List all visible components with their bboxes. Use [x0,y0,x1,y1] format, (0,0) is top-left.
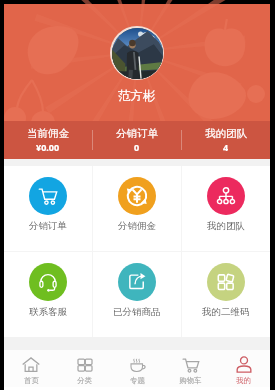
other: Profile [234,355,254,375]
button[interactable]: 当前佣金 [4,127,92,153]
staticText: 联系客服 [29,306,67,318]
staticText: 分销订单 [116,127,158,140]
staticText: 分销订单 [29,220,67,232]
button[interactable]: 我的二维码 [182,252,270,337]
staticText: ¥0.00 [36,141,60,153]
staticText: 分销佣金 [118,220,156,232]
staticText: 4 [223,141,229,153]
staticText: 我的二维码 [202,306,250,318]
button[interactable]: Profile photo [110,26,164,80]
staticText: 分类 [77,376,92,385]
button[interactable]: 分销订单 [93,127,181,153]
other: Topics [128,355,148,375]
other: Cart [181,355,201,375]
staticText: 首页 [24,376,39,385]
staticText: 我的团队 [205,127,247,140]
button[interactable]: 联系客服 [4,252,92,337]
staticText: 0 [134,141,140,153]
button[interactable]: Home [4,350,58,387]
button[interactable]: Categories [58,350,111,387]
staticText: 购物车 [179,376,202,385]
button[interactable]: 分销订单 [4,166,92,251]
button[interactable]: 分销佣金 [93,166,181,251]
button[interactable]: Topics [111,350,164,387]
staticText: 我的团队 [207,220,245,232]
button[interactable]: 我的团队 [182,166,270,251]
staticText: 范方彬 [118,88,156,104]
button[interactable]: Profile [217,350,270,387]
other: Categories [75,355,95,375]
other: Home [21,355,41,375]
staticText: 专题 [130,376,145,385]
button[interactable]: Cart [164,350,217,387]
staticText: 已分销商品 [113,306,161,318]
staticText: 当前佣金 [27,127,69,140]
staticText: 我的 [236,376,251,385]
button[interactable]: 我的团队 [182,127,270,153]
button[interactable]: 已分销商品 [93,252,181,337]
